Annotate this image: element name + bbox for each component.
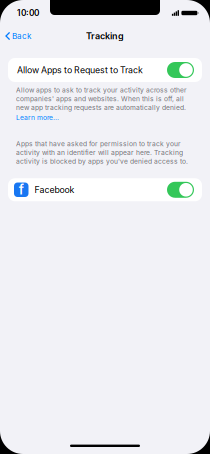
- staticText: Tracking: [86, 30, 124, 41]
- button[interactable]: f: [8, 178, 202, 201]
- staticText: Apps that have asked for permission to t…: [16, 140, 188, 165]
- button[interactable]: Learn more...: [16, 114, 59, 122]
- staticText: f: [19, 182, 24, 198]
- staticText: 10:00: [17, 8, 39, 18]
- staticText: Back: [12, 31, 31, 41]
- button[interactable]: Allow Apps to Request to Track: [8, 58, 202, 82]
- button[interactable]: Back: [0, 28, 36, 44]
- staticText: Allow apps to ask to track your activity…: [16, 86, 187, 112]
- staticText: Facebook: [34, 184, 74, 195]
- staticText: Learn more...: [16, 114, 59, 122]
- staticText: Allow Apps to Request to Track: [17, 65, 143, 75]
